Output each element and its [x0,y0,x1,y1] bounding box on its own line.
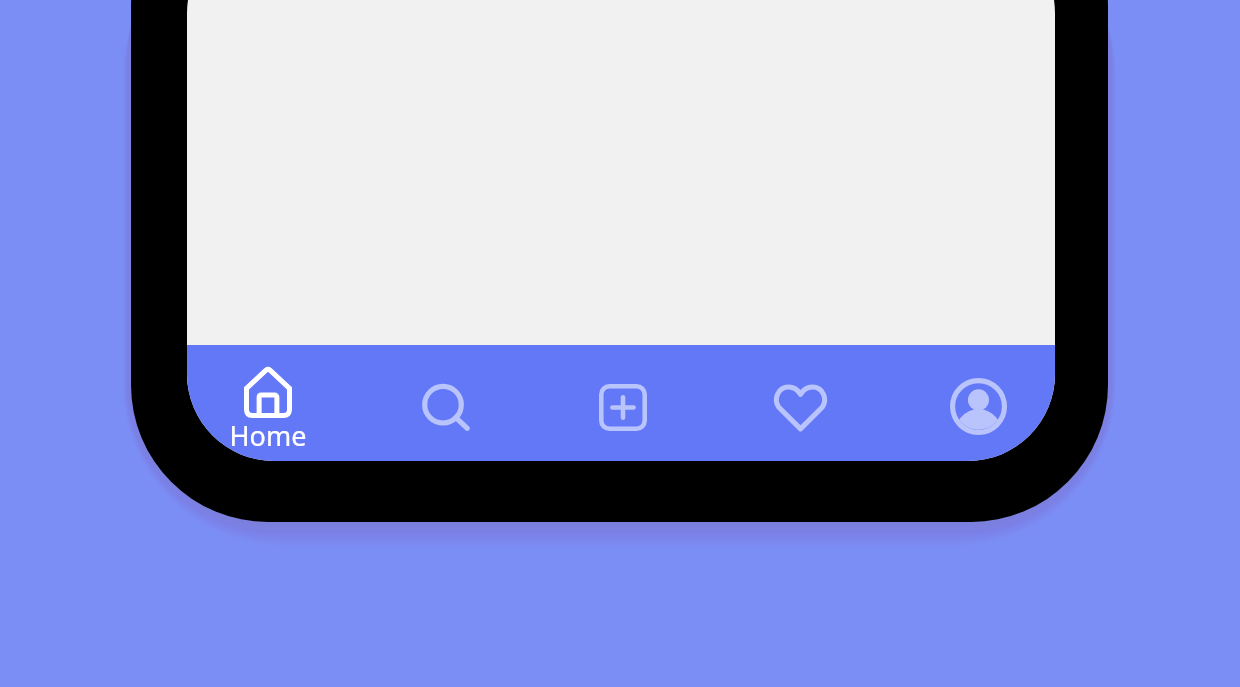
button[interactable]: Create [534,345,708,461]
staticText: Home [218,417,318,454]
button[interactable]: Search [361,345,535,461]
button[interactable]: Home [187,345,361,461]
button[interactable]: Profile [881,345,1055,461]
button[interactable]: Favorites [708,345,882,461]
